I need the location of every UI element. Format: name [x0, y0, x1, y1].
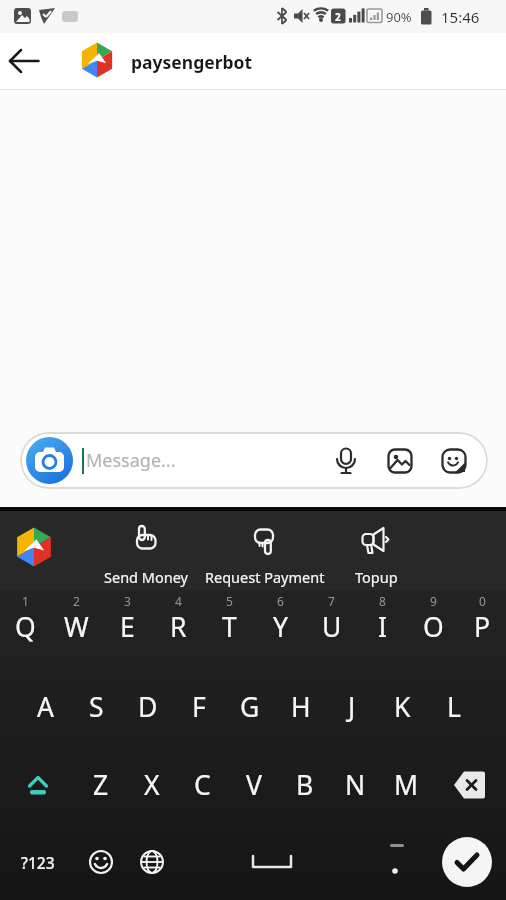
staticText: C	[194, 767, 211, 803]
staticText: M	[394, 767, 419, 803]
button[interactable]	[6, 43, 42, 79]
staticText: F	[192, 689, 206, 725]
staticText: J	[348, 689, 356, 725]
staticText: P	[474, 609, 491, 645]
staticText: Send Money	[104, 567, 188, 587]
button[interactable]: F	[173, 668, 224, 746]
staticText: 7	[328, 593, 335, 609]
staticText: 9	[430, 593, 437, 609]
button[interactable]	[0, 746, 75, 824]
button[interactable]: Send Money	[91, 511, 201, 590]
button[interactable]: 9	[408, 590, 459, 668]
staticText: ?123	[21, 852, 55, 873]
staticText: Z	[93, 767, 109, 803]
button[interactable]: N	[330, 746, 381, 824]
staticText: E	[120, 609, 135, 645]
staticText: 3	[124, 593, 131, 609]
staticText: Message...	[86, 448, 176, 473]
staticText: N	[345, 767, 366, 803]
button[interactable]: 0	[459, 590, 506, 668]
button[interactable]: 4	[153, 590, 204, 668]
staticText: H	[291, 689, 311, 725]
button[interactable]: ?123	[0, 824, 75, 900]
button[interactable]	[432, 746, 506, 824]
staticText: S	[89, 689, 104, 725]
button[interactable]: L	[428, 668, 479, 746]
button[interactable]	[386, 447, 414, 475]
staticText: 6	[277, 593, 284, 609]
staticText: T	[222, 609, 237, 645]
button[interactable]: A	[20, 668, 71, 746]
staticText: L	[447, 689, 461, 725]
button[interactable]: V	[228, 746, 279, 824]
button[interactable]	[367, 824, 427, 900]
button[interactable]: K	[377, 668, 428, 746]
button[interactable]: D	[122, 668, 173, 746]
button[interactable]	[75, 824, 126, 900]
staticText: 15:46	[441, 7, 480, 27]
staticText: W	[64, 609, 89, 645]
staticText: V	[246, 767, 262, 803]
button[interactable]: Request Payment	[201, 511, 329, 590]
staticText: B	[296, 767, 314, 803]
staticText: Request Payment	[205, 567, 325, 587]
staticText: X	[144, 767, 160, 803]
button[interactable]: M	[381, 746, 432, 824]
button[interactable]: Message...	[20, 432, 488, 489]
staticText: 2	[73, 593, 80, 609]
staticText: K	[394, 689, 411, 725]
button[interactable]	[427, 824, 506, 900]
button[interactable]: X	[126, 746, 177, 824]
button[interactable]	[126, 824, 177, 900]
staticText: 90%	[386, 8, 412, 26]
button[interactable]: H	[275, 668, 326, 746]
button[interactable]: 8	[357, 590, 408, 668]
button[interactable]: 5	[204, 590, 255, 668]
button[interactable]	[26, 437, 73, 484]
staticText: paysengerbot	[131, 50, 253, 74]
button[interactable]: 7	[306, 590, 357, 668]
button[interactable]	[440, 447, 468, 475]
staticText: Q	[15, 609, 36, 645]
button[interactable]: 2	[51, 590, 102, 668]
staticText: A	[37, 689, 54, 725]
staticText: 8	[379, 593, 386, 609]
button[interactable]: S	[71, 668, 122, 746]
button[interactable]: Z	[75, 746, 126, 824]
button[interactable]	[332, 447, 360, 475]
staticText: 2	[335, 10, 341, 24]
button[interactable]: C	[177, 746, 228, 824]
staticText: 4	[175, 593, 182, 609]
button[interactable]: 1	[0, 590, 51, 668]
staticText: G	[240, 689, 260, 725]
staticText: 5	[226, 593, 233, 609]
staticText: R	[170, 609, 187, 645]
staticText: U	[322, 609, 342, 645]
staticText: I	[378, 609, 387, 645]
button[interactable]: 3	[102, 590, 153, 668]
button[interactable]	[177, 824, 367, 900]
staticText: Topup	[355, 567, 398, 587]
button[interactable]: 6	[255, 590, 306, 668]
staticText: D	[138, 689, 158, 725]
staticText: 0	[479, 593, 486, 609]
staticText: Y	[273, 609, 288, 645]
button[interactable]: G	[224, 668, 275, 746]
button[interactable]: J	[326, 668, 377, 746]
button[interactable]: B	[279, 746, 330, 824]
staticText: 1	[22, 593, 29, 609]
button[interactable]: Topup	[329, 511, 423, 590]
staticText: O	[423, 609, 444, 645]
